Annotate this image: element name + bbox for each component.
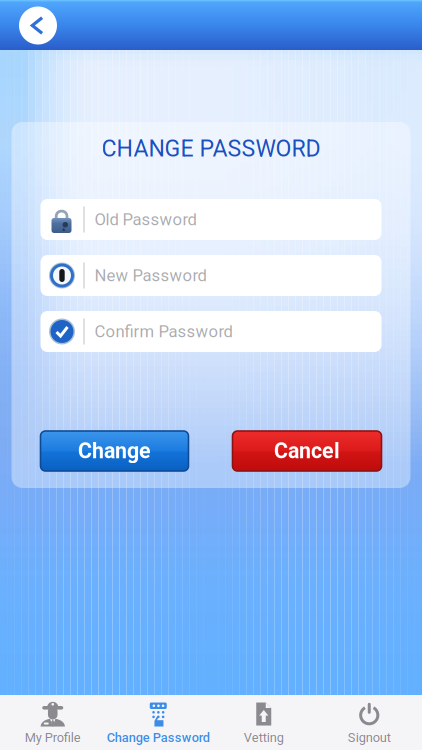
- staticText: Change Password: [107, 730, 210, 745]
- button[interactable]: Cancel: [232, 431, 381, 471]
- staticText: Change: [78, 438, 151, 463]
- button[interactable]: Vetting: [211, 695, 316, 750]
- staticText: Confirm Password: [94, 322, 232, 341]
- button[interactable]: My Profile: [0, 695, 105, 750]
- staticText: Vetting: [244, 730, 284, 745]
- button[interactable]: Signout: [316, 695, 422, 750]
- staticText: New Password: [94, 266, 206, 285]
- staticText: CHANGE PASSWORD: [101, 135, 320, 162]
- staticText: My Profile: [25, 730, 81, 745]
- staticText: Old Password: [94, 210, 196, 229]
- button[interactable]: Change: [40, 431, 188, 471]
- staticText: Cancel: [274, 438, 340, 463]
- staticText: Signout: [348, 730, 391, 745]
- button[interactable]: Change Password: [105, 695, 211, 750]
- button[interactable]: Back: [14, 1, 62, 49]
